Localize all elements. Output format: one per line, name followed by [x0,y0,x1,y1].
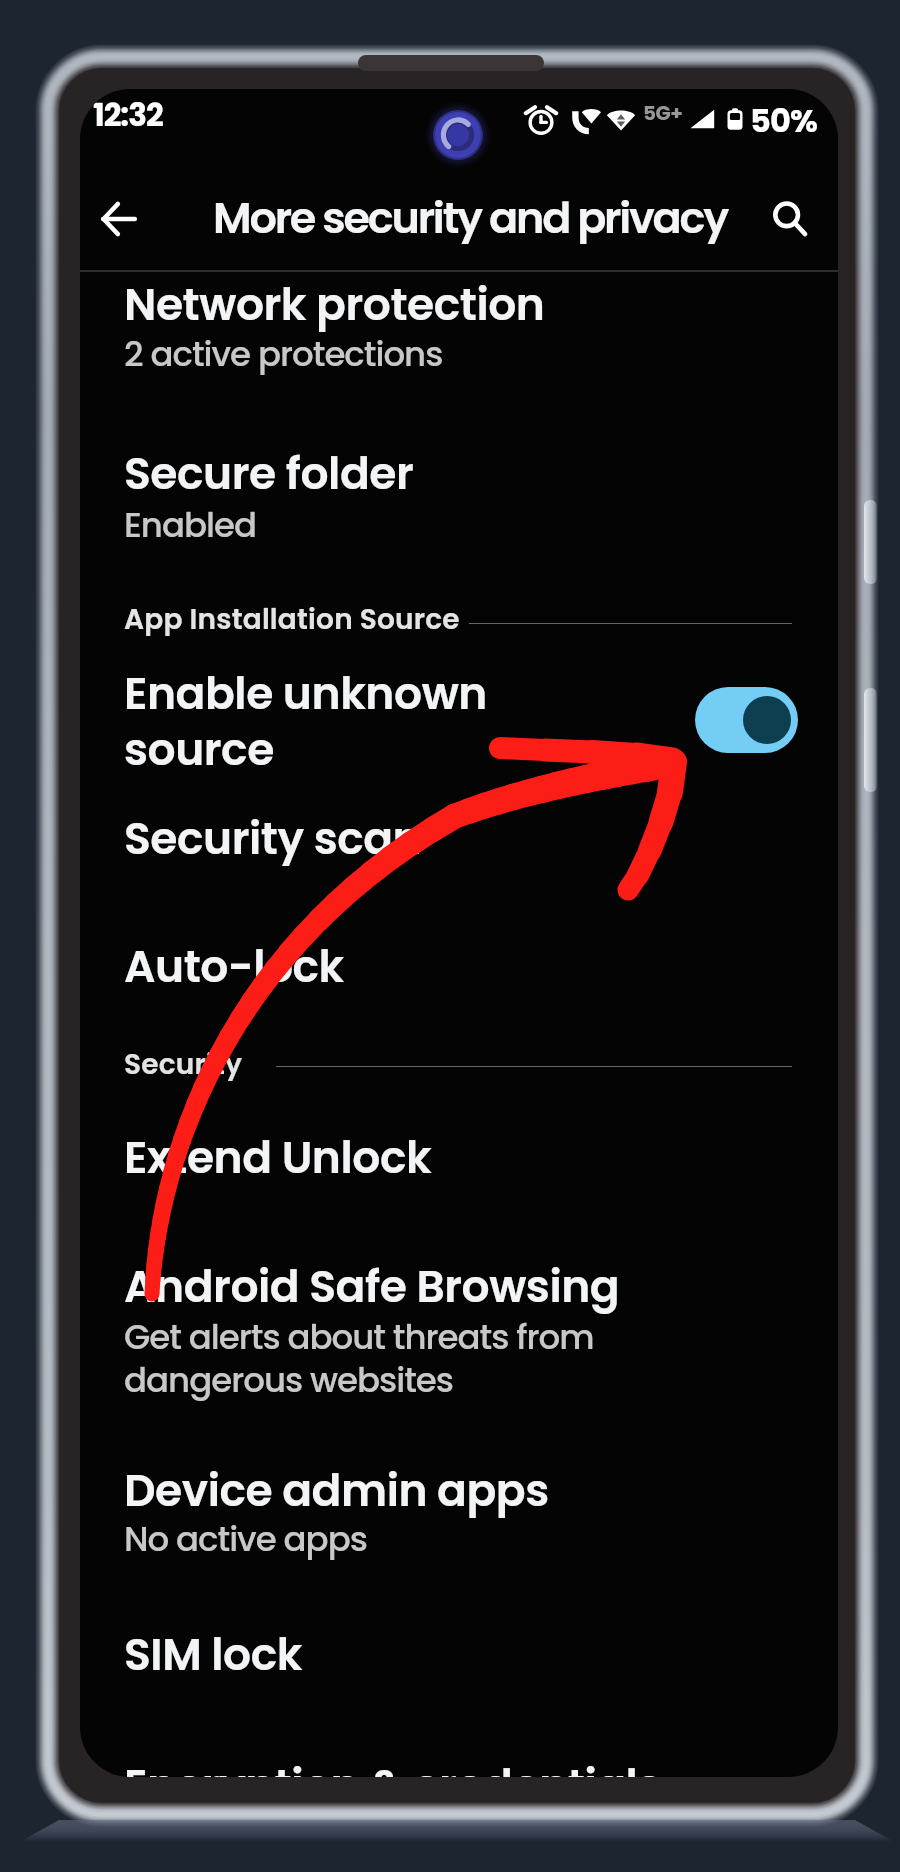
button[interactable]: Encryption & credentials [80,1733,838,1777]
staticText: Device admin apps [124,1460,549,1522]
staticText: Secure folder [124,443,414,505]
staticText: Enabled [124,501,256,549]
staticText: 12:32 [93,93,163,136]
staticText: Network protection [124,274,545,336]
button[interactable]: Security scan [80,786,838,876]
staticText: Android Safe Browsing [124,1256,620,1318]
staticText: More security and privacy [213,188,728,248]
staticText: 5G+ [643,99,683,127]
button[interactable]: Network protection [80,252,838,458]
staticText: Enable unknown source [124,663,487,780]
staticText: Get alerts about threats from dangerous … [124,1313,594,1404]
button[interactable]: Auto-lock [80,914,838,1004]
staticText: Extend Unlock [124,1127,432,1189]
button[interactable]: Secure folder [80,421,838,627]
staticText: App Installation Source [124,600,460,639]
staticText: Security [124,1045,243,1084]
button[interactable]: Enable unknown source [80,643,838,783]
button[interactable]: Search [748,168,832,270]
button[interactable]: Back [82,168,156,270]
staticText: 2 active protections [124,330,443,378]
staticText: No active apps [124,1515,367,1563]
button[interactable]: Extend Unlock [80,1105,838,1195]
button[interactable]: SIM lock [80,1602,838,1692]
staticText: Encryption & credentials [124,1755,661,1777]
staticText: SIM lock [124,1624,302,1686]
button[interactable]: Device admin apps [80,1438,838,1644]
button[interactable]: Enable unknown source toggle [695,687,798,753]
staticText: 50% [750,98,818,138]
button[interactable]: Android Safe Browsing [80,1234,838,1484]
staticText: Auto-lock [124,936,344,998]
staticText: Security scan [124,808,422,870]
